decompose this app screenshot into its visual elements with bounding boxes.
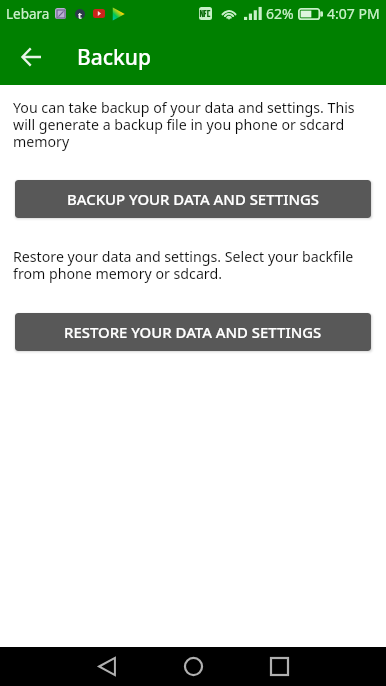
staticText: RESTORE YOUR DATA AND SETTINGS <box>64 322 322 342</box>
staticText: t <box>78 9 82 19</box>
button[interactable]: RESTORE YOUR DATA AND SETTINGS <box>15 313 371 351</box>
staticText: Backup <box>77 43 151 72</box>
staticText: Restore your data and settings. Select y… <box>13 247 373 283</box>
button[interactable]: Recents <box>251 647 307 686</box>
button[interactable]: BACKUP YOUR DATA AND SETTINGS <box>15 180 371 218</box>
staticText: 62% <box>266 4 294 23</box>
staticText: You can take backup of your data and set… <box>13 98 373 151</box>
button[interactable]: Back <box>0 29 58 85</box>
button[interactable]: Home <box>165 647 221 686</box>
staticText: 4:07 PM <box>327 4 380 23</box>
staticText: Lebara <box>6 5 50 23</box>
staticText: BACKUP YOUR DATA AND SETTINGS <box>67 189 320 209</box>
button[interactable]: Back <box>79 647 135 686</box>
